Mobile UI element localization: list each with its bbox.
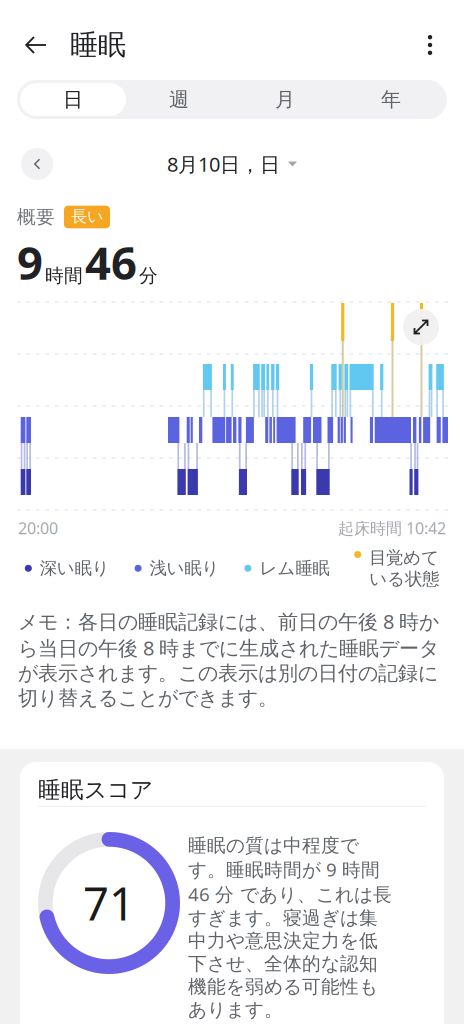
button[interactable]: Previous day <box>17 144 57 184</box>
staticText: 深い眠り <box>40 558 110 579</box>
button[interactable]: 日 <box>20 83 126 116</box>
staticText: 睡眠の質は中程度です。睡眠時間が 9 時間 46 分 であり、これは長すぎます。… <box>188 834 392 1021</box>
staticText: 月 <box>275 87 295 112</box>
staticText: 長い <box>71 207 103 226</box>
staticText: 目覚めて いる状態 <box>369 547 439 590</box>
button[interactable]: 睡眠 <box>70 21 126 69</box>
staticText: 46 <box>85 232 137 292</box>
staticText: 概要 <box>17 205 55 228</box>
staticText: 睡眠 <box>70 28 126 62</box>
button[interactable]: 週 <box>126 83 232 116</box>
staticText: 起床時間 10:42 <box>338 517 446 539</box>
staticText: 浅い眠り <box>150 558 220 579</box>
staticText: 9 <box>17 232 43 292</box>
staticText: メモ：各日の睡眠記録には、前日の午後 8 時から当日の午後 8 時までに生成され… <box>18 608 439 710</box>
staticText: 睡眠スコア <box>38 776 153 804</box>
staticText: レム睡眠 <box>259 558 329 579</box>
button[interactable]: Expand chart <box>403 309 439 345</box>
button[interactable]: More options <box>410 21 450 69</box>
staticText: 時間 <box>45 264 83 287</box>
staticText: 71 <box>83 873 135 933</box>
button[interactable]: 月 <box>232 83 338 116</box>
staticText: 20:00 <box>18 517 58 539</box>
button[interactable]: 8月10日，日 <box>167 144 297 184</box>
staticText: 週 <box>169 87 189 112</box>
button[interactable]: Back <box>14 21 58 69</box>
staticText: 日 <box>63 87 83 112</box>
staticText: 年 <box>381 87 401 112</box>
staticText: 分 <box>139 264 158 287</box>
button[interactable]: 年 <box>338 83 444 116</box>
staticText: 8月10日，日 <box>167 151 280 177</box>
